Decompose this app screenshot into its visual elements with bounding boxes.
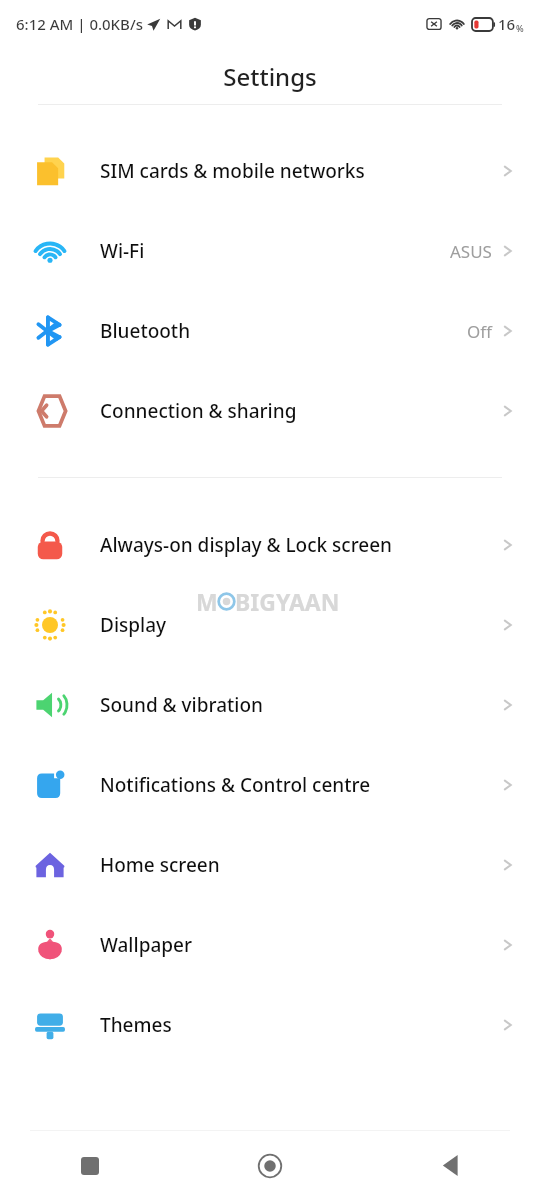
button[interactable]: Connection & sharing [0, 371, 540, 451]
button[interactable]: Always-on display & Lock screen [0, 505, 540, 585]
staticText: Settings [223, 60, 317, 93]
button[interactable]: Sound & vibration [0, 665, 540, 745]
staticText: Bluetooth [100, 318, 459, 344]
staticText: Wi-Fi [100, 238, 442, 264]
button[interactable]: Notifications & Control centre [0, 745, 540, 825]
button[interactable]: Wi-Fi [0, 211, 540, 291]
staticText: % [516, 22, 524, 34]
button[interactable]: Themes [0, 985, 540, 1065]
staticText: Themes [100, 1012, 490, 1038]
staticText: 16 [498, 14, 516, 34]
staticText: BIGYAAN [235, 586, 340, 617]
button[interactable]: Bluetooth [0, 291, 540, 371]
staticText: SIM cards & mobile networks [100, 158, 490, 184]
staticText: Display [100, 612, 490, 638]
staticText: Home screen [100, 852, 490, 878]
staticText: Notifications & Control centre [100, 772, 490, 798]
staticText: Connection & sharing [100, 398, 490, 424]
button[interactable]: Back [360, 1131, 540, 1200]
button[interactable]: Home screen [0, 825, 540, 905]
staticText: Sound & vibration [100, 692, 490, 718]
button[interactable]: Wallpaper [0, 905, 540, 985]
staticText: 6:12 AM | 0.0KB/s [16, 14, 143, 34]
staticText: ASUS [450, 240, 492, 263]
button[interactable]: Display [0, 585, 540, 665]
button[interactable]: Recent apps [0, 1131, 180, 1200]
staticText: Always-on display & Lock screen [100, 532, 490, 558]
staticText: Off [467, 320, 492, 343]
button[interactable]: SIM cards & mobile networks [0, 131, 540, 211]
staticText: M [196, 586, 218, 617]
button[interactable]: Home [180, 1131, 360, 1200]
staticText: Wallpaper [100, 932, 490, 958]
